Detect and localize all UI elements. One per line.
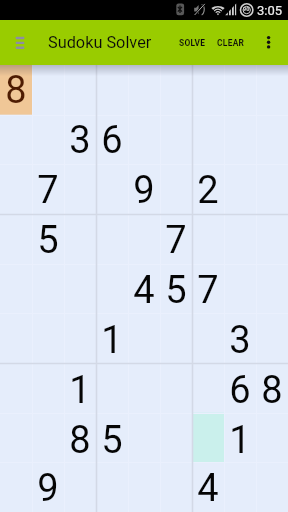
staticText: Sudoku Solver <box>48 33 152 52</box>
button[interactable]: Cell row 1 column 6, empty <box>160 65 192 115</box>
staticText: 1 <box>101 318 123 363</box>
button[interactable]: Cell row 2 column 3, 3 <box>64 115 96 165</box>
button[interactable]: Cell row 6 column 7, empty <box>192 315 224 365</box>
button[interactable]: Cell row 8 column 3, 8 <box>64 415 96 465</box>
button[interactable]: Cell row 5 column 7, 7 <box>192 265 224 315</box>
button[interactable]: More options <box>254 20 284 65</box>
staticText: 6 <box>229 368 251 413</box>
button[interactable]: Cell row 3 column 9, empty <box>256 165 288 215</box>
button[interactable]: Cell row 4 column 7, empty <box>192 215 224 265</box>
staticText: 8 <box>261 368 283 413</box>
button[interactable]: CLEAR <box>214 20 247 65</box>
button[interactable]: Cell row 9 column 4, empty <box>96 465 128 512</box>
button[interactable]: Cell row 3 column 5, 9 <box>128 165 160 215</box>
button[interactable]: Cell row 8 column 8, 1 <box>224 415 256 465</box>
button[interactable]: Open navigation menu <box>4 26 36 59</box>
button[interactable]: Cell row 7 column 3, 1 <box>64 365 96 415</box>
button[interactable]: Cell row 8 column 4, 5 <box>96 415 128 465</box>
button[interactable]: Cell row 5 column 4, empty <box>96 265 128 315</box>
staticText: 5 <box>165 268 187 313</box>
button[interactable]: Cell row 7 column 4, empty <box>96 365 128 415</box>
button[interactable]: Cell row 3 column 4, empty <box>96 165 128 215</box>
button[interactable]: Cell row 1 column 1, 8 <box>0 65 32 115</box>
staticText: 1 <box>229 418 251 463</box>
button[interactable]: Cell row 9 column 7, 4 <box>192 465 224 512</box>
button[interactable]: Cell row 1 column 5, empty <box>128 65 160 115</box>
staticText: 5 <box>37 218 59 263</box>
button[interactable]: Cell row 6 column 2, empty <box>32 315 64 365</box>
staticText: 4 <box>197 466 219 511</box>
staticText: 8 <box>69 418 91 463</box>
button[interactable]: Cell row 2 column 4, 6 <box>96 115 128 165</box>
staticText: 3 <box>229 318 251 363</box>
staticText: 9 <box>37 466 59 511</box>
button[interactable]: Cell row 1 column 4, empty <box>96 65 128 115</box>
button[interactable]: Cell row 4 column 2, 5 <box>32 215 64 265</box>
staticText: 8 <box>5 68 27 113</box>
button[interactable]: Cell row 9 column 2, 9 <box>32 465 64 512</box>
button[interactable]: Cell row 5 column 6, 5 <box>160 265 192 315</box>
button[interactable]: Cell row 5 column 5, 4 <box>128 265 160 315</box>
staticText: 6 <box>101 118 123 163</box>
button[interactable]: Cell row 7 column 9, 8 <box>256 365 288 415</box>
button[interactable]: Cell row 4 column 6, 7 <box>160 215 192 265</box>
button[interactable]: Cell row 6 column 9, empty <box>256 315 288 365</box>
button[interactable]: Cell row 4 column 4, empty <box>96 215 128 265</box>
staticText: 7 <box>165 218 187 263</box>
button[interactable]: Cell row 6 column 5, empty <box>128 315 160 365</box>
button[interactable]: Cell row 6 column 1, empty <box>0 315 32 365</box>
staticText: SOLVE <box>179 38 206 48</box>
button[interactable]: Cell row 1 column 2, empty <box>32 65 64 115</box>
button[interactable]: Cell row 7 column 8, 6 <box>224 365 256 415</box>
button[interactable]: Cell row 6 column 8, 3 <box>224 315 256 365</box>
button[interactable]: SOLVE <box>176 20 209 65</box>
button[interactable]: Cell row 3 column 1, empty <box>0 165 32 215</box>
button[interactable]: Cell row 3 column 6, empty <box>160 165 192 215</box>
button[interactable]: Cell row 3 column 3, empty <box>64 165 96 215</box>
button[interactable]: Cell row 6 column 6, empty <box>160 315 192 365</box>
button[interactable]: Cell row 1 column 8, empty <box>224 65 256 115</box>
button[interactable]: Cell row 8 column 7, empty <box>192 415 224 465</box>
button[interactable]: Cell row 7 column 7, empty <box>192 365 224 415</box>
button[interactable]: Cell row 1 column 9, empty <box>256 65 288 115</box>
button[interactable]: Cell row 3 column 2, 7 <box>32 165 64 215</box>
button[interactable]: Cell row 1 column 3, empty <box>64 65 96 115</box>
button[interactable]: Cell row 3 column 7, 2 <box>192 165 224 215</box>
button[interactable]: Cell row 6 column 4, 1 <box>96 315 128 365</box>
button[interactable]: Cell row 2 column 7, empty <box>192 115 224 165</box>
button[interactable]: Cell row 1 column 7, empty <box>192 65 224 115</box>
button[interactable]: Cell row 6 column 3, empty <box>64 315 96 365</box>
button[interactable]: Cell row 3 column 8, empty <box>224 165 256 215</box>
